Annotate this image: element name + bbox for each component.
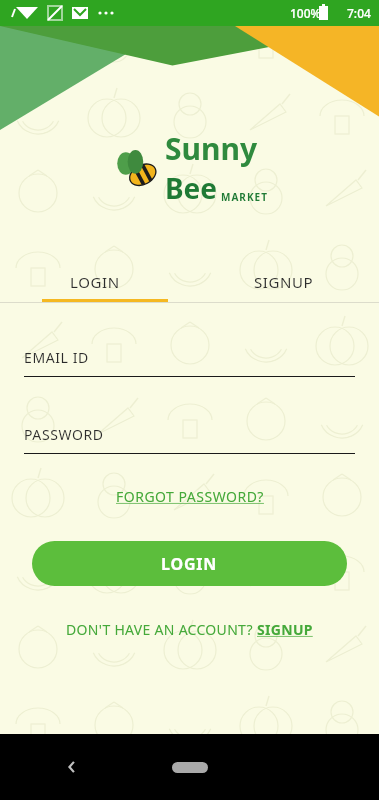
button[interactable]: Home: [172, 762, 208, 773]
staticText: DON'T HAVE AN ACCOUNT?: [66, 620, 257, 639]
button[interactable]: LOGIN: [32, 541, 347, 586]
staticText: SIGNUP: [254, 272, 314, 292]
staticText: FORGOT PASSWORD?: [116, 487, 264, 506]
button[interactable]: FORGOT PASSWORD?: [110, 485, 270, 508]
staticText: EMAIL ID: [24, 348, 89, 367]
button[interactable]: LOGIN: [0, 258, 189, 306]
staticText: 7:04: [347, 5, 371, 21]
staticText: MARKET: [221, 190, 268, 204]
staticText: Sunny: [165, 128, 258, 169]
button[interactable]: SIGNUP: [257, 620, 313, 639]
staticText: SIGNUP: [257, 620, 313, 639]
staticText: PASSWORD: [24, 425, 104, 444]
staticText: 100%: [290, 5, 321, 21]
button[interactable]: SIGNUP: [189, 258, 379, 306]
staticText: Bee: [165, 169, 218, 207]
button[interactable]: Back: [52, 747, 92, 787]
staticText: LOGIN: [161, 553, 218, 575]
staticText: LOGIN: [70, 272, 120, 292]
